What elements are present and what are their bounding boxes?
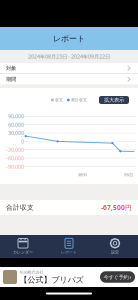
button[interactable]: 期間 <box>0 74 138 84</box>
staticText: 90,000 <box>8 113 24 120</box>
button[interactable]: 対象 <box>0 63 138 73</box>
staticText: 累計収支 <box>71 97 87 102</box>
staticText: 合計収支 <box>6 203 34 212</box>
staticText: 08/30 <box>77 172 86 177</box>
staticText: KLab株式会社 <box>19 269 43 274</box>
staticText: 30,000 <box>8 129 24 137</box>
staticText: カレンダー <box>13 250 33 255</box>
staticText: 対象 <box>6 65 16 72</box>
staticText: 09/22 <box>124 172 133 177</box>
staticText: -60,000 <box>6 155 24 162</box>
staticText: 設定 <box>111 250 119 255</box>
staticText: 収支 <box>55 97 63 102</box>
button[interactable]: カレンダー <box>0 235 46 258</box>
staticText: -30,000 <box>6 146 24 153</box>
staticText: 今すぐ予約 › <box>103 273 131 281</box>
button[interactable]: 今すぐ予約 › <box>100 271 135 283</box>
staticText: -67,500円 <box>101 203 132 212</box>
button[interactable]: 拡大表示 <box>99 96 129 104</box>
staticText: レポート <box>53 34 85 43</box>
staticText: 拡大表示 <box>104 97 124 103</box>
staticText: 【公式】ブリパズ <box>19 275 83 285</box>
staticText: 60,000 <box>8 121 24 128</box>
staticText: 期間 <box>6 76 16 83</box>
staticText: -90,000 <box>6 163 24 170</box>
staticText: 2024年08月23日 - 2024年09月22日 <box>28 53 110 60</box>
staticText: レポート <box>61 250 77 255</box>
button[interactable]: レポート <box>46 235 92 258</box>
button[interactable]: 設定 <box>92 235 138 258</box>
staticText: 0 <box>21 138 24 145</box>
